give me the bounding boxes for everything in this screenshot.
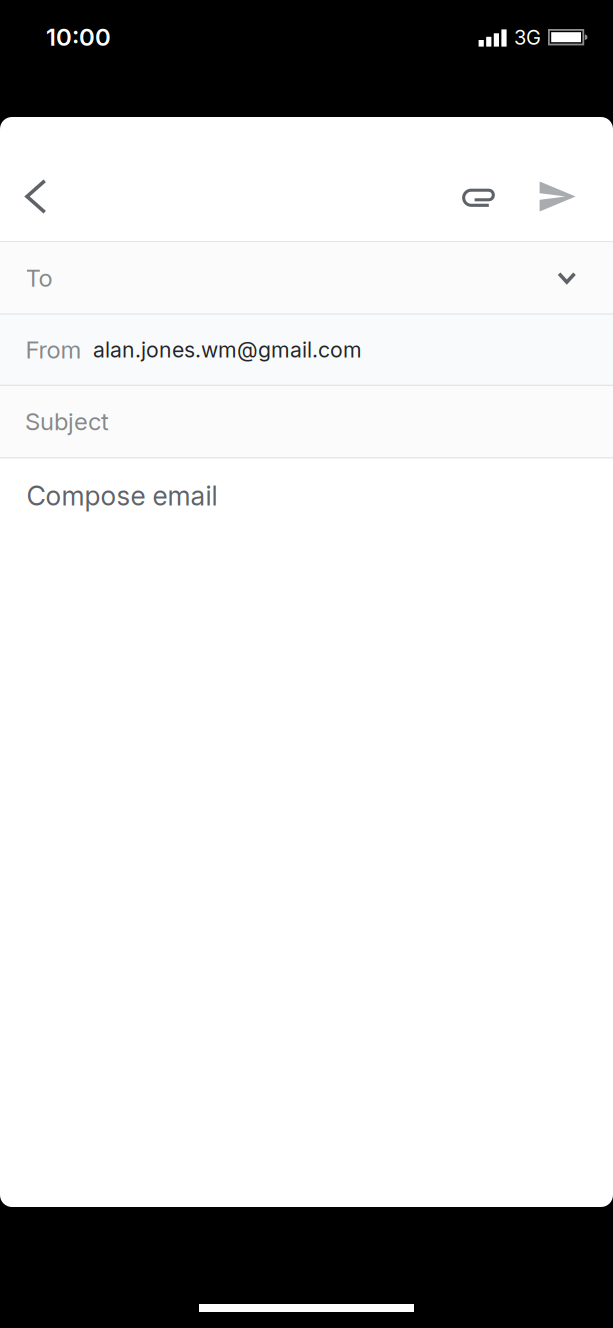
button[interactable]: Back xyxy=(0,179,61,214)
button[interactable]: Send xyxy=(528,181,613,211)
button[interactable]: From xyxy=(0,315,613,385)
button[interactable]: To xyxy=(0,242,613,313)
staticText: Compose email xyxy=(26,480,217,511)
button[interactable]: Compose email xyxy=(0,458,613,1207)
staticText: 3G xyxy=(514,26,541,49)
staticText: To xyxy=(25,264,52,292)
button[interactable]: Attach file xyxy=(450,187,507,206)
button[interactable]: Subject xyxy=(0,386,613,457)
staticText: 10:00 xyxy=(46,23,111,51)
staticText: From xyxy=(25,335,81,364)
staticText: Subject xyxy=(25,407,109,436)
staticText: alan.jones.wm@gmail.com xyxy=(93,337,362,362)
